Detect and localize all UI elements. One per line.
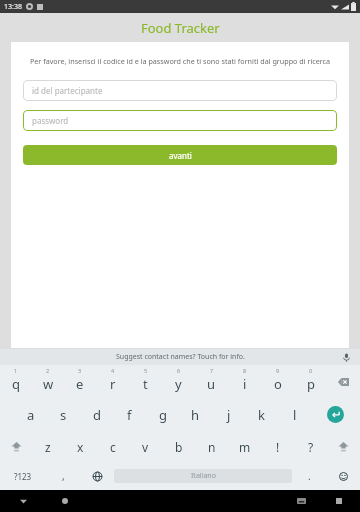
- staticText: t: [143, 375, 148, 393]
- staticText: f: [127, 406, 132, 424]
- button[interactable]: Backspace: [327, 365, 360, 398]
- button[interactable]: Emoji: [326, 462, 360, 490]
- button[interactable]: 1: [0, 365, 32, 398]
- staticText: 9: [276, 367, 280, 374]
- button[interactable]: a: [15, 398, 47, 431]
- button[interactable]: Back: [10, 490, 36, 512]
- staticText: w: [43, 375, 54, 393]
- button[interactable]: k: [245, 398, 278, 431]
- button[interactable]: s: [47, 398, 80, 431]
- button[interactable]: 8: [228, 365, 261, 398]
- button[interactable]: Keyboard: [288, 490, 314, 512]
- button[interactable]: ,: [46, 462, 80, 490]
- staticText: 1: [14, 367, 18, 374]
- staticText: g: [159, 406, 167, 424]
- staticText: i: [243, 375, 247, 393]
- staticText: v: [142, 439, 149, 455]
- button[interactable]: 0: [294, 365, 327, 398]
- staticText: b: [175, 439, 183, 455]
- staticText: 0: [309, 367, 313, 374]
- button[interactable]: ?: [294, 431, 327, 462]
- button[interactable]: Change language: [80, 462, 114, 490]
- button[interactable]: Enter: [311, 398, 360, 431]
- staticText: p: [307, 375, 315, 393]
- other: Voice input: [342, 353, 351, 362]
- staticText: c: [110, 439, 116, 455]
- button[interactable]: Shift: [0, 431, 32, 462]
- staticText: password: [32, 115, 69, 126]
- staticText: id del partecipante: [32, 85, 103, 96]
- button[interactable]: f: [113, 398, 146, 431]
- button[interactable]: z: [32, 431, 64, 462]
- staticText: e: [76, 375, 84, 393]
- staticText: .: [308, 469, 311, 483]
- button[interactable]: 6: [162, 365, 195, 398]
- button[interactable]: 2: [32, 365, 64, 398]
- staticText: r: [110, 375, 116, 393]
- button[interactable]: 4: [96, 365, 129, 398]
- staticText: 8: [243, 367, 247, 374]
- staticText: Food Tracker: [141, 19, 220, 37]
- staticText: o: [274, 375, 282, 393]
- button[interactable]: g: [146, 398, 179, 431]
- staticText: Italiano: [191, 471, 216, 481]
- staticText: 3: [78, 367, 82, 374]
- button[interactable]: 9: [261, 365, 294, 398]
- button[interactable]: 3: [64, 365, 96, 398]
- staticText: u: [207, 375, 216, 393]
- staticText: Per favore, inserisci il codice id e la …: [24, 56, 336, 66]
- button[interactable]: j: [212, 398, 245, 431]
- staticText: 5: [144, 367, 148, 374]
- staticText: z: [45, 439, 51, 455]
- staticText: m: [239, 439, 251, 455]
- button[interactable]: m: [228, 431, 261, 462]
- staticText: n: [208, 439, 216, 455]
- staticText: Suggest contact names? Touch for info.: [116, 352, 245, 362]
- button[interactable]: Italiano: [114, 469, 292, 483]
- staticText: 4: [111, 367, 115, 374]
- button[interactable]: Shift: [327, 431, 360, 462]
- button[interactable]: c: [96, 431, 129, 462]
- staticText: a: [27, 406, 35, 424]
- button[interactable]: id del partecipante: [23, 80, 337, 101]
- staticText: 13:38: [4, 2, 22, 12]
- staticText: !: [276, 439, 280, 455]
- button[interactable]: Recents: [326, 490, 352, 512]
- staticText: k: [258, 406, 265, 424]
- staticText: s: [60, 406, 67, 424]
- staticText: x: [77, 439, 84, 455]
- button[interactable]: l: [278, 398, 311, 431]
- staticText: ?123: [14, 471, 32, 482]
- button[interactable]: Home: [52, 490, 78, 512]
- staticText: 6: [177, 367, 181, 374]
- staticText: 7: [210, 367, 214, 374]
- button[interactable]: 7: [195, 365, 228, 398]
- staticText: 2: [46, 367, 50, 374]
- staticText: j: [227, 406, 231, 424]
- staticText: l: [293, 406, 297, 424]
- staticText: q: [12, 375, 20, 393]
- staticText: y: [175, 375, 182, 393]
- staticText: d: [93, 406, 101, 424]
- staticText: ?: [308, 439, 314, 455]
- button[interactable]: h: [179, 398, 212, 431]
- staticText: avanti: [169, 150, 192, 161]
- staticText: ,: [62, 469, 65, 483]
- button[interactable]: avanti: [23, 145, 337, 165]
- button[interactable]: x: [64, 431, 96, 462]
- button[interactable]: ?123: [0, 462, 46, 490]
- button[interactable]: d: [80, 398, 113, 431]
- button[interactable]: n: [195, 431, 228, 462]
- button[interactable]: v: [129, 431, 162, 462]
- button[interactable]: !: [261, 431, 294, 462]
- button[interactable]: b: [162, 431, 195, 462]
- staticText: h: [191, 406, 200, 424]
- button[interactable]: 5: [129, 365, 162, 398]
- button[interactable]: password: [23, 110, 337, 131]
- button[interactable]: .: [292, 462, 326, 490]
